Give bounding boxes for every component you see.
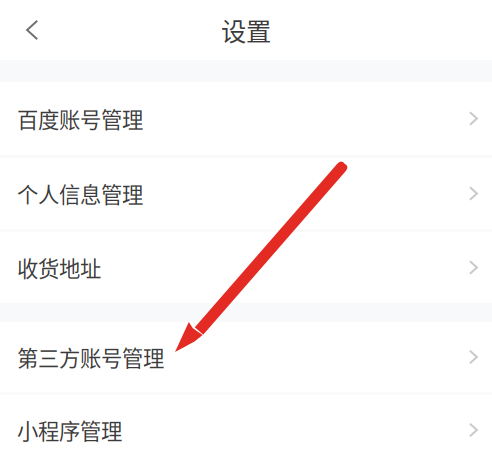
button[interactable]: 第三方账号管理 <box>0 322 492 392</box>
staticText: 小程序管理 <box>17 415 122 445</box>
staticText: 设置 <box>221 12 271 48</box>
staticText: 第三方账号管理 <box>17 342 164 372</box>
button[interactable]: 收货地址 <box>0 232 492 303</box>
button[interactable]: 小程序管理 <box>0 395 492 465</box>
staticText: 百度账号管理 <box>17 103 143 134</box>
button[interactable]: 个人信息管理 <box>0 158 492 229</box>
staticText: 个人信息管理 <box>17 178 143 209</box>
staticText: 收货地址 <box>17 252 101 283</box>
button[interactable]: Back <box>0 7 54 53</box>
button[interactable]: 百度账号管理 <box>0 82 492 155</box>
